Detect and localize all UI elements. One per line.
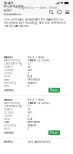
staticText: Status xyxy=(4,131,13,134)
staticText: XS-2 / 1400 xyxy=(27,98,44,101)
staticText: en.jacksonv.wiki/magnetics-spec xyxy=(3,4,24,21)
staticText: The unit-type designator for magnetics i… xyxy=(4,18,66,28)
staticText: 12 xyxy=(27,108,30,111)
staticText: Drains xyxy=(4,65,12,68)
staticText: sealed xyxy=(27,81,36,84)
staticText: 12 xyxy=(27,65,30,68)
staticText: XS-2 / 1400 xyxy=(27,56,44,59)
staticText: Cores xyxy=(4,72,12,75)
staticText: Drains xyxy=(4,108,12,111)
staticText: C xyxy=(27,127,29,130)
staticText: Scope xyxy=(4,111,14,114)
staticText: 2 xyxy=(27,114,29,117)
staticText: 1.1 xyxy=(27,62,30,65)
staticText: n/a xyxy=(27,75,31,78)
staticText: 1.1 xyxy=(27,104,30,108)
staticText: 2 xyxy=(27,72,29,75)
staticText: Status xyxy=(4,89,13,92)
staticText: Passive (2 uA/A) xyxy=(27,59,49,62)
staticText: C xyxy=(27,84,29,88)
staticText: n/a xyxy=(27,117,31,120)
staticText: See appendix B xyxy=(27,140,50,143)
staticText: Model xyxy=(4,56,13,59)
button[interactable]: Menu xyxy=(65,10,69,14)
staticText: Scope xyxy=(4,68,14,72)
staticText: 147 xyxy=(27,68,32,72)
staticText: Pass xyxy=(50,131,58,134)
staticText: Seq xyxy=(4,75,10,78)
staticText: Model xyxy=(4,98,13,101)
button[interactable]: Tabs xyxy=(57,10,62,14)
staticText: Calibrated kg xyxy=(4,104,22,108)
staticText: Passive (2 uA/A) xyxy=(27,101,49,104)
button[interactable]: magnetics — spec sheet xyxy=(16,6,57,9)
staticText: Rev xyxy=(4,127,9,130)
staticText: Monitoring xyxy=(4,59,20,62)
staticText: minimum xyxy=(27,120,39,124)
staticText: sealed xyxy=(27,124,36,127)
staticText: Cores xyxy=(4,114,12,117)
staticText: Housing xyxy=(4,81,16,84)
button[interactable]: Pass xyxy=(48,88,60,93)
button[interactable]: Pass xyxy=(48,130,60,135)
staticText: Mass xyxy=(4,120,9,124)
staticText: Notes xyxy=(4,140,12,143)
staticText: Mass xyxy=(4,78,9,81)
staticText: Seq xyxy=(4,117,10,120)
staticText: Calibrated kg xyxy=(4,62,22,65)
staticText: Monitoring xyxy=(4,101,20,104)
staticText: 147 xyxy=(27,111,32,114)
staticText: Pass xyxy=(50,88,58,92)
staticText: Housing xyxy=(4,124,16,127)
staticText: 9:41 xyxy=(4,1,13,5)
button[interactable]: en.jacksonv.wiki/magnetics-spec xyxy=(3,4,26,21)
button[interactable]: Search xyxy=(49,10,54,14)
staticText: magnetics — spec sheet xyxy=(17,6,57,9)
staticText: minimum xyxy=(27,78,39,81)
staticText: Rev xyxy=(4,84,9,88)
